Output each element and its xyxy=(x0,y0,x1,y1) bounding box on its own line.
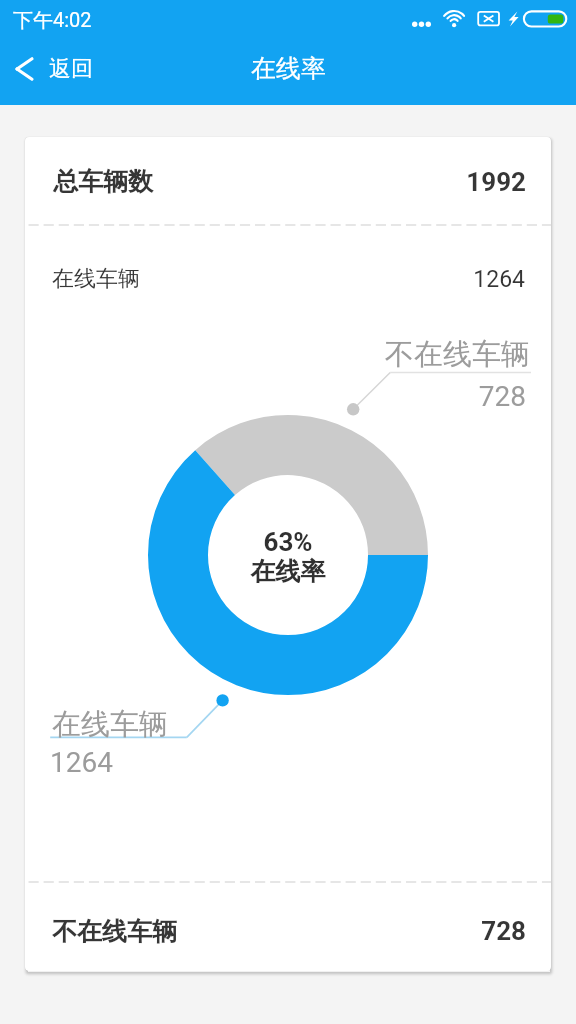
staticText: 1264 xyxy=(50,746,113,779)
other: Back xyxy=(16,42,33,105)
staticText: 下午4:02 xyxy=(13,8,92,33)
staticText: 1992 xyxy=(326,167,526,197)
staticText: 在线率 xyxy=(188,556,388,587)
staticText: 1264 xyxy=(326,266,525,293)
button[interactable]: Back xyxy=(0,42,115,105)
staticText: 在线车辆 xyxy=(52,706,168,743)
button[interactable]: 在线车辆 xyxy=(25,247,551,305)
button[interactable]: 不在线车辆 xyxy=(25,882,551,971)
staticText: 不在线车辆 xyxy=(385,336,530,373)
staticText: 63% xyxy=(188,527,388,557)
staticText: 728 xyxy=(325,380,526,413)
staticText: 在线车辆 xyxy=(52,265,140,293)
staticText: 不在线车辆 xyxy=(52,916,177,947)
staticText: 返回 xyxy=(49,55,93,83)
button[interactable]: 总车辆数 xyxy=(25,137,551,224)
staticText: 728 xyxy=(326,916,526,946)
staticText: 总车辆数 xyxy=(53,166,153,197)
staticText: 在线率 xyxy=(251,53,326,84)
